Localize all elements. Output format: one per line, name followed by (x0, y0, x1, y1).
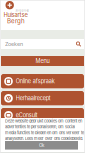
staticText: zorggroep (15, 9, 29, 12)
button[interactable]: Menu (1, 56, 84, 66)
staticText: Menu (35, 58, 49, 64)
button[interactable]: eConsult (1, 108, 84, 123)
staticText: Ok (39, 143, 44, 148)
staticText: media functies te bieden en om ons verke… (5, 130, 84, 135)
button[interactable]: Zoeken (1, 39, 84, 49)
staticText: advertenties te personaliseren, om socia… (5, 124, 75, 129)
staticText: Deze website gebruikt cookies om content… (5, 119, 82, 123)
button[interactable]: Herhaalrecept (1, 91, 84, 106)
staticText: Bergh (7, 17, 25, 25)
staticText: analyseren. Lees meer over ons cookiebel… (5, 136, 83, 141)
button[interactable]: Ok (1, 141, 84, 150)
staticText: Huisartse (3, 11, 27, 18)
staticText: Zoeken (5, 41, 23, 47)
staticText: Online afspraak (16, 78, 55, 85)
button[interactable]: Online afspraak (1, 74, 84, 89)
staticText: Herhaalrecept (16, 95, 51, 102)
staticText: eConsult (16, 112, 38, 119)
